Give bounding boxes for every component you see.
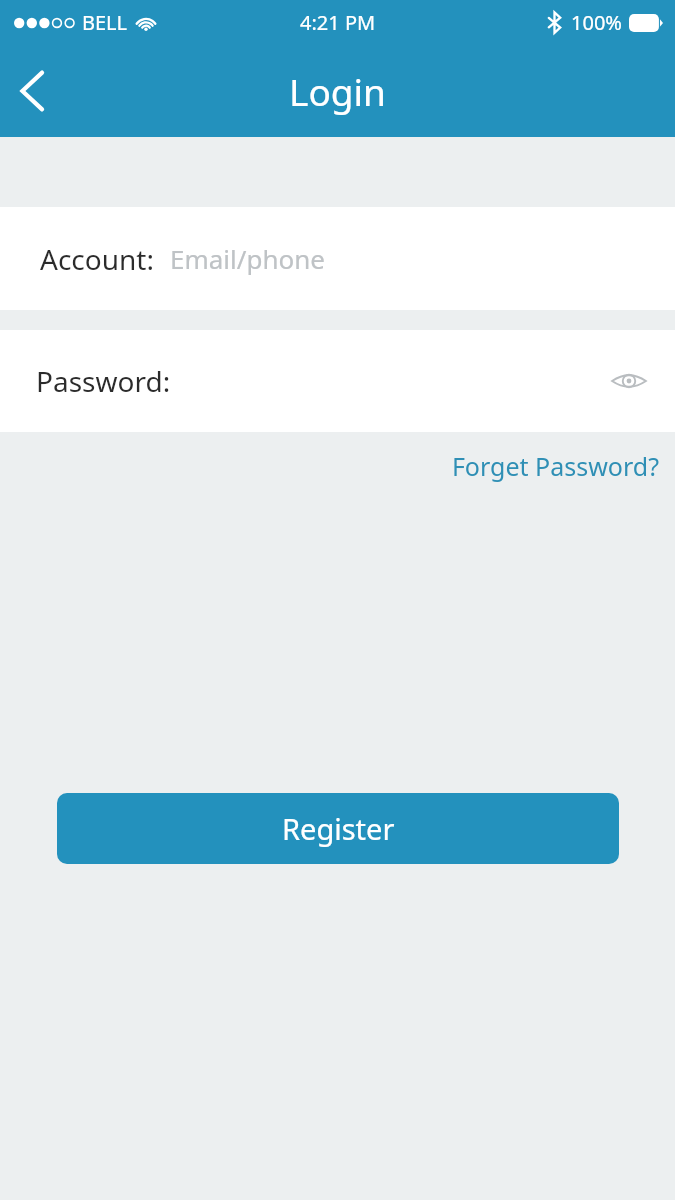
staticText: 100% xyxy=(571,9,622,36)
staticText: BELL xyxy=(82,9,128,36)
staticText: Register xyxy=(282,809,395,848)
button[interactable]: Register xyxy=(57,793,619,864)
staticText: Forget Password? xyxy=(451,449,659,483)
button[interactable]: Back xyxy=(0,56,64,126)
staticText: 4:21 PM xyxy=(300,9,376,36)
button[interactable]: Forget Password? xyxy=(435,441,675,491)
staticText: Password: xyxy=(36,362,171,400)
button[interactable]: Show password xyxy=(601,353,657,409)
button[interactable]: Account: xyxy=(0,207,675,310)
staticText: Account: xyxy=(40,240,154,278)
button[interactable]: Password: xyxy=(0,330,675,432)
staticText: Login xyxy=(289,66,386,116)
staticText: Email/phone xyxy=(170,241,325,276)
